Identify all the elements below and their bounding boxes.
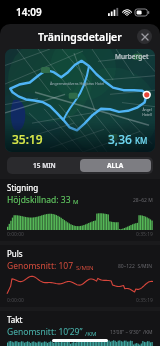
staticText: 0:35:19 (136, 231, 153, 238)
staticText: Höjdskillnad: 33 (7, 194, 73, 206)
staticText: 0:35:19 (136, 297, 153, 304)
staticText: Takt (7, 314, 23, 325)
button[interactable]: ALLA (80, 159, 151, 172)
staticText: 14:09 (16, 5, 42, 19)
staticText: 28–62 M (133, 197, 153, 204)
button[interactable]: Puls (0, 245, 160, 307)
staticText: 35:19 (12, 131, 43, 147)
button[interactable]: Takt (0, 311, 160, 346)
staticText: Genomsnitt: 107 (7, 260, 76, 272)
staticText: Genomsnitt: 10’29” (7, 326, 85, 338)
button[interactable]: 15 MIN (9, 159, 80, 172)
staticText: ALLA (107, 161, 124, 170)
button[interactable]: Karta (5, 49, 155, 152)
staticText: 80–122 S/MIN (118, 263, 153, 270)
button[interactable]: Stigning (0, 179, 160, 241)
staticText: M (73, 198, 79, 206)
staticText: 13’08” – 9’30” /KM (110, 329, 153, 336)
staticText: 3,36 (108, 131, 135, 147)
staticText: Ångermanälvens Högbrov Hotel (50, 81, 105, 86)
staticText: 0:00:00 (7, 231, 24, 238)
staticText: 0:00:00 (7, 297, 24, 304)
staticText: KM (135, 135, 148, 146)
staticText: 15 MIN (33, 161, 56, 170)
staticText: S/MIN (76, 264, 94, 272)
staticText: Murberget (115, 52, 149, 61)
staticText: /KM (85, 330, 97, 338)
staticText: Ångel Hotell (142, 107, 152, 117)
staticText: Stigning (7, 182, 39, 193)
staticText: Träningsdetaljer (38, 30, 122, 44)
staticText: Puls (7, 248, 23, 259)
button[interactable]: Stäng (137, 29, 152, 44)
